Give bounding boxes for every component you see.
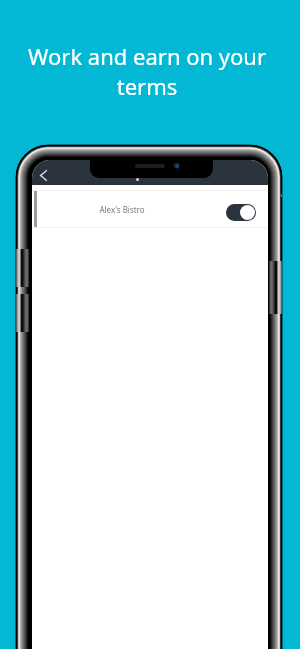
button[interactable]: Toggle store open: [226, 204, 256, 221]
staticText: Alex's Bistro: [37, 204, 207, 215]
button[interactable]: Back: [32, 160, 52, 185]
button[interactable]: Alex's Bistro: [32, 191, 268, 227]
staticText: Work and earn on your terms: [11, 41, 283, 102]
